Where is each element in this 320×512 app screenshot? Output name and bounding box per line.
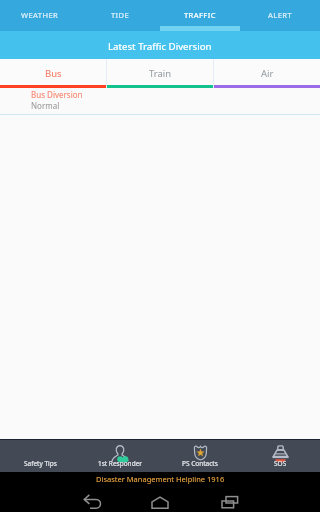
staticText: SOS [274,459,287,468]
button[interactable]: Safety Tips [0,440,80,472]
staticText: TRAFFIC [184,10,216,20]
button[interactable]: TRAFFIC [160,0,240,31]
button[interactable]: ALERT [240,0,320,31]
button[interactable]: Recents [216,488,244,512]
staticText: Air [261,67,274,80]
button[interactable]: Home [146,488,174,512]
staticText: WEATHER [21,10,59,20]
staticText: TIDE [111,10,130,20]
button[interactable]: Air [214,59,320,88]
button[interactable]: Back [78,488,106,512]
staticText: Disaster Management Helpline 1916 [96,474,225,484]
staticText: Train [149,67,172,80]
staticText: ALERT [268,10,292,20]
button[interactable]: Bus [0,59,106,88]
staticText: 1st Responder [98,459,142,468]
button[interactable]: SOS [240,440,320,472]
staticText: Safety Tips [24,459,57,468]
button[interactable]: Train [107,59,213,88]
button[interactable]: WEATHER [0,0,80,31]
staticText: Latest Traffic Diversion [108,40,212,53]
staticText: Normal [31,100,60,111]
staticText: Bus Diversion [31,89,83,100]
button[interactable]: 1st Responder [80,440,160,472]
button[interactable]: PS Contacts [160,440,240,472]
staticText: PS Contacts [182,459,218,468]
staticText: Bus [45,67,62,80]
button[interactable]: TIDE [80,0,160,31]
